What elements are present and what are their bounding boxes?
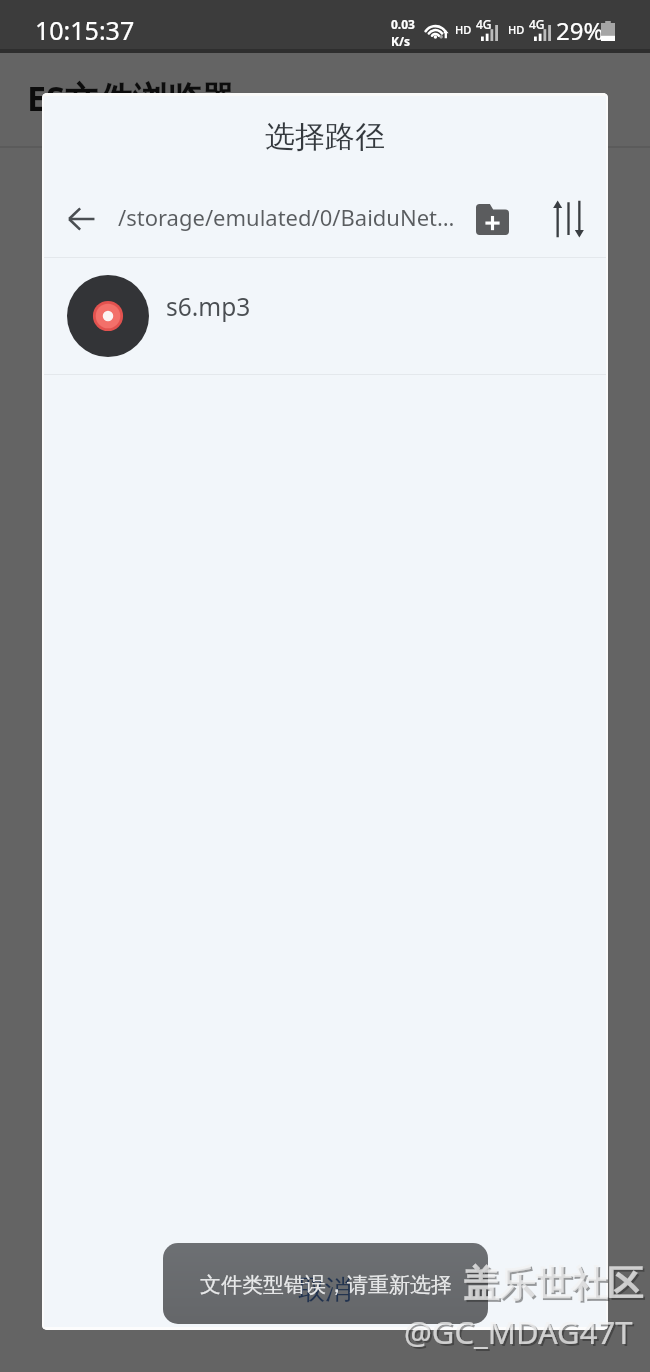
staticText: 盖乐世社区 [463,1261,643,1306]
staticText: /storage/emulated/0/BaiduNet… [118,202,455,232]
staticText: HD [455,22,472,37]
staticText: 文件类型错误，请重新选择 [200,1272,452,1298]
button[interactable]: s6.mp3 [42,258,608,374]
staticText: 取消 [298,1273,352,1307]
staticText: 0.03 [391,16,415,32]
staticText: @GC_MDAG47T [406,1313,635,1355]
staticText: @GC_MDAG47T [404,1311,633,1353]
staticText: 10:15:37 [35,13,135,47]
staticText: 盖乐世社区 [465,1263,645,1308]
staticText: HD [508,22,525,37]
staticText: 4G [476,16,492,32]
button[interactable]: Back [57,195,105,243]
button[interactable]: 取消 [42,1232,608,1328]
button[interactable]: Sort [545,196,591,242]
staticText: s6.mp3 [166,290,251,323]
button[interactable]: New folder [469,196,515,242]
staticText: K/s [391,33,410,49]
staticText: ES文件浏览器 [27,75,235,121]
staticText: 29% [556,14,604,47]
staticText: 4G [529,16,545,32]
staticText: 选择路径 [265,118,385,156]
